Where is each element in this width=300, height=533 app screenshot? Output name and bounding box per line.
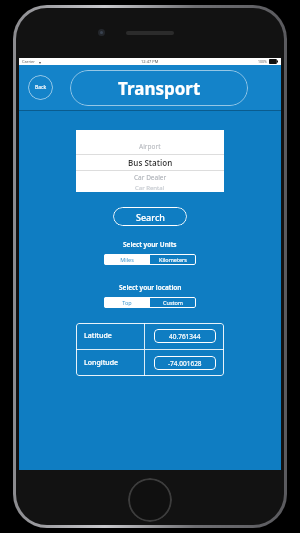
- staticText: Miles: [120, 256, 134, 263]
- staticText: Kilometers: [159, 256, 187, 263]
- staticText: Longitude: [84, 358, 119, 368]
- button[interactable]: Transport: [70, 70, 248, 106]
- staticText: Top: [122, 299, 132, 306]
- staticText: Select your location: [119, 283, 182, 292]
- staticText: Latitude: [84, 331, 112, 341]
- button[interactable]: Miles: [104, 254, 149, 265]
- staticText: Airport: [139, 142, 161, 151]
- staticText: Back: [35, 84, 47, 91]
- button[interactable]: Airport: [76, 130, 224, 192]
- button[interactable]: Custom: [150, 297, 196, 308]
- button[interactable]: 40.761344: [154, 329, 216, 343]
- staticText: Car Dealer: [134, 173, 167, 182]
- staticText: -74.001628: [168, 359, 202, 368]
- button[interactable]: Search: [113, 207, 187, 226]
- staticText: Custom: [163, 299, 183, 306]
- staticText: Bus Station: [128, 157, 173, 168]
- staticText: 12:47 PM: [141, 59, 159, 64]
- button[interactable]: Home: [128, 478, 172, 522]
- button[interactable]: Kilometers: [150, 254, 196, 265]
- button[interactable]: Back: [28, 75, 53, 100]
- staticText: Transport: [118, 77, 201, 100]
- staticText: Car Rental: [135, 184, 165, 192]
- staticText: 40.761344: [169, 332, 201, 341]
- button[interactable]: Top: [104, 297, 149, 308]
- staticText: 100%: [258, 59, 267, 64]
- staticText: Select your Units: [123, 240, 177, 249]
- staticText: Carrier: [22, 59, 36, 64]
- button[interactable]: -74.001628: [154, 356, 216, 370]
- staticText: Search: [136, 211, 165, 223]
